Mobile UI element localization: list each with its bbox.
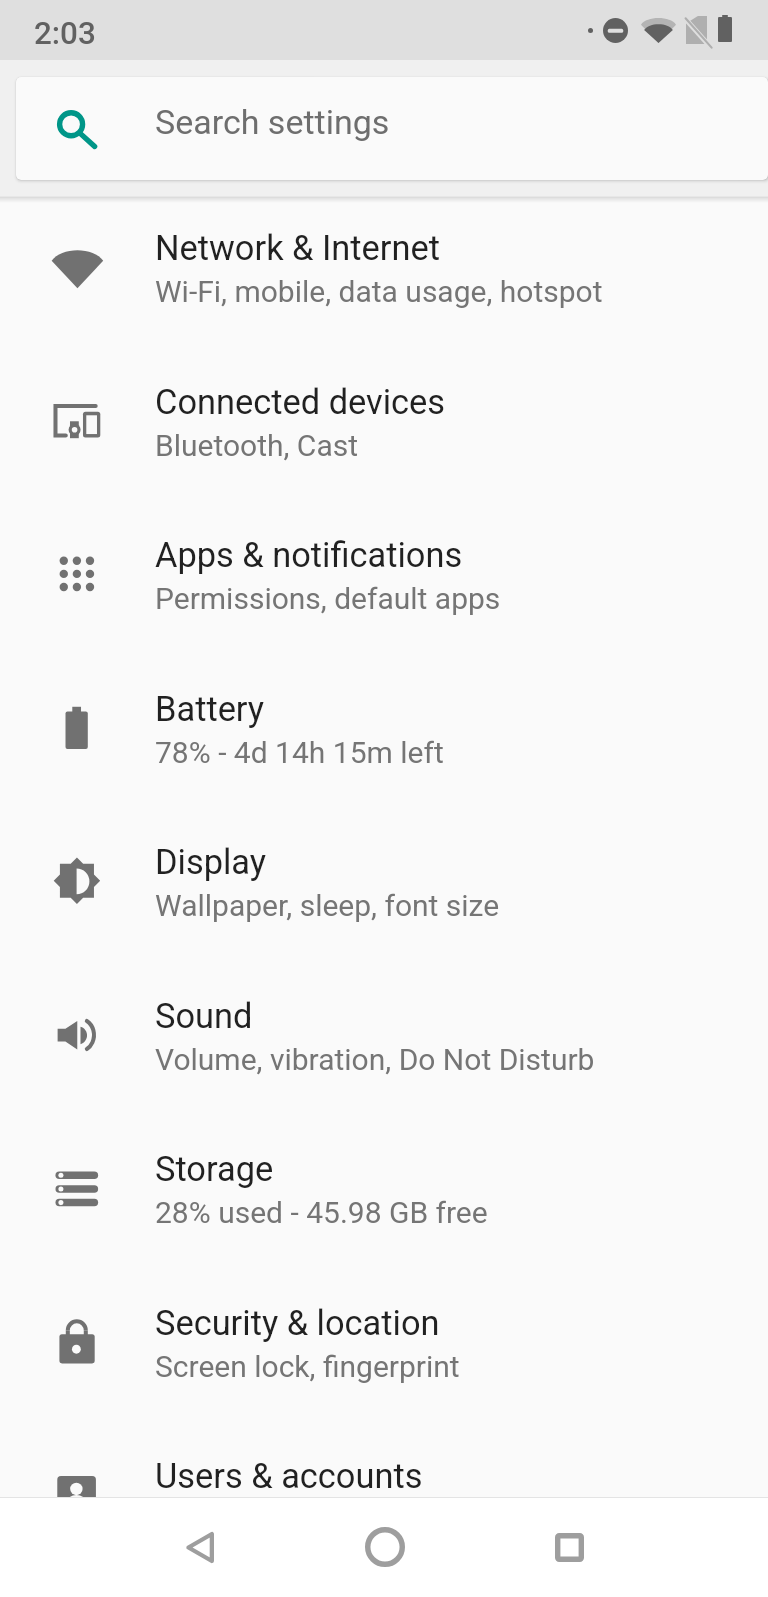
button[interactable]: Apps & notifications <box>0 505 768 659</box>
staticText: Wi-Fi, mobile, data usage, hotspot <box>155 274 603 309</box>
button[interactable]: Storage <box>0 1119 768 1273</box>
button[interactable]: Display <box>0 812 768 966</box>
staticText: Permissions, default apps <box>155 581 501 616</box>
staticText: Apps & notifications <box>155 535 463 575</box>
button[interactable]: Security & location <box>0 1273 768 1427</box>
staticText: 78% - 4d 14h 15m left <box>155 735 444 770</box>
button[interactable]: Recent apps <box>521 1499 617 1595</box>
staticText: 28% used - 45.98 GB free <box>155 1195 488 1230</box>
button[interactable]: Battery <box>0 659 768 813</box>
staticText: 2:03 <box>34 15 96 52</box>
staticText: Display <box>155 842 267 882</box>
button[interactable]: Sound <box>0 966 768 1120</box>
staticText: Screen lock, fingerprint <box>155 1349 460 1384</box>
button[interactable]: Search settings <box>16 77 768 180</box>
staticText: Storage <box>155 1149 274 1189</box>
staticText: Connected devices <box>155 382 446 422</box>
button[interactable]: Network & Internet <box>0 198 768 352</box>
button[interactable]: Connected devices <box>0 352 768 506</box>
staticText: Security & location <box>155 1303 440 1343</box>
button[interactable]: Home <box>337 1499 433 1595</box>
staticText: Network & Internet <box>155 228 440 268</box>
staticText: Users & accounts <box>155 1456 423 1496</box>
staticText: Volume, vibration, Do Not Disturb <box>155 1042 595 1077</box>
staticText: Bluetooth, Cast <box>155 428 358 463</box>
staticText: Wallpaper, sleep, font size <box>155 888 500 923</box>
button[interactable]: Back <box>151 1499 247 1595</box>
button[interactable]: Users & accounts <box>0 1426 768 1497</box>
staticText: Battery <box>155 689 265 729</box>
staticText: Search settings <box>155 102 390 142</box>
staticText: Sound <box>155 996 253 1036</box>
